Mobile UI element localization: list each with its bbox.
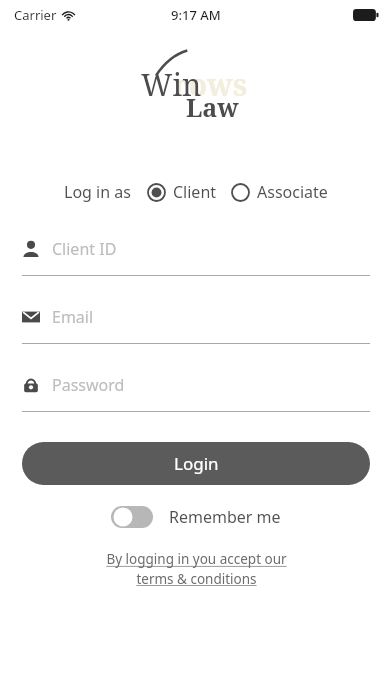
button[interactable]: Remember me toggle (111, 506, 153, 528)
button[interactable]: Client ID (22, 235, 370, 276)
staticText: Log in as (64, 181, 131, 203)
staticText: By logging in you accept our terms & con… (106, 550, 287, 588)
button[interactable]: Associate (231, 181, 328, 203)
staticText: Associate (257, 181, 328, 203)
staticText: 9:17 AM (171, 6, 221, 24)
staticText: Remember me (169, 506, 281, 528)
staticText: Login (174, 452, 219, 475)
button[interactable]: By logging in you accept our terms & con… (60, 550, 332, 588)
staticText: Law (186, 90, 239, 124)
staticText: Client (173, 181, 217, 203)
staticText: Password (52, 374, 125, 396)
staticText: Client ID (52, 238, 117, 260)
button[interactable]: Password (22, 371, 370, 412)
button[interactable]: Client (147, 181, 217, 203)
button[interactable]: Email (22, 303, 370, 344)
staticText: rows (173, 64, 248, 105)
button[interactable]: Remember me toggle (111, 506, 281, 528)
button[interactable]: Login (22, 442, 370, 485)
staticText: Email (52, 306, 94, 328)
staticText: Carrier (14, 6, 57, 24)
staticText: Win (141, 64, 202, 105)
